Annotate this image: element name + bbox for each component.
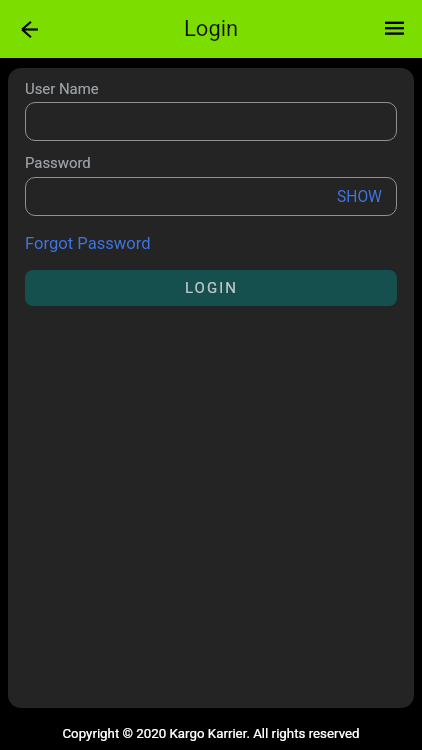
- button[interactable]: LOGIN: [25, 270, 397, 306]
- button[interactable]: Menu: [376, 11, 412, 47]
- staticText: Login: [184, 16, 239, 42]
- button[interactable]: Forgot Password: [25, 234, 151, 253]
- staticText: LOGIN: [185, 279, 238, 297]
- staticText: User Name: [25, 80, 99, 97]
- staticText: Copyright © 2020 Kargo Karrier. All righ…: [0, 726, 422, 742]
- staticText: SHOW: [337, 188, 382, 206]
- button[interactable]: Back: [11, 11, 47, 47]
- staticText: Forgot Password: [25, 234, 151, 253]
- button[interactable]: Password input field: [25, 177, 397, 216]
- button[interactable]: SHOW: [337, 188, 382, 206]
- button[interactable]: User Name input field: [25, 102, 397, 141]
- staticText: Password: [25, 154, 91, 171]
